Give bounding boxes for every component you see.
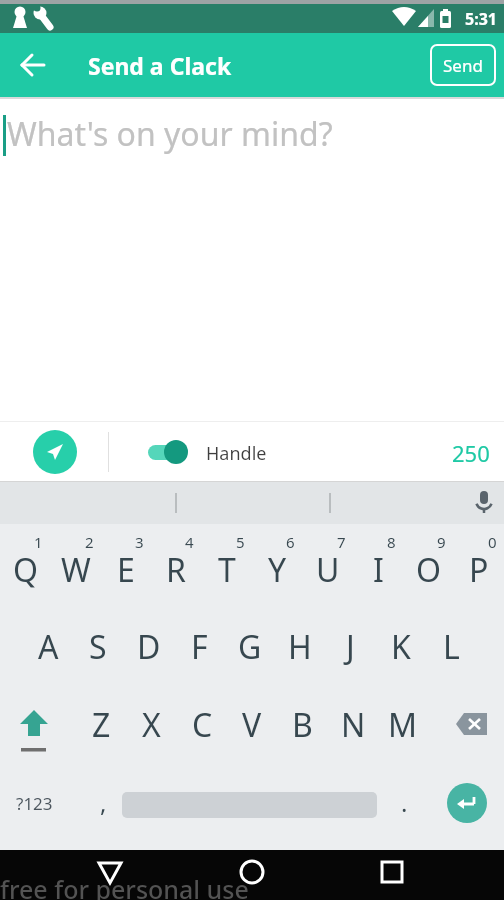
staticText: X: [142, 703, 161, 747]
staticText: M: [388, 703, 418, 747]
button[interactable]: K: [376, 623, 426, 671]
button[interactable]: S: [73, 623, 123, 671]
staticText: P: [469, 548, 489, 592]
button[interactable]: R: [151, 546, 201, 594]
staticText: B: [292, 703, 313, 747]
staticText: U: [316, 548, 340, 592]
staticText: E: [117, 548, 135, 592]
button[interactable]: F: [174, 623, 224, 671]
staticText: K: [391, 625, 411, 669]
button[interactable]: G: [225, 623, 275, 671]
staticText: free for personal use: [0, 872, 249, 900]
staticText: 9: [437, 532, 446, 552]
staticText: Z: [92, 703, 111, 747]
button[interactable]: N: [328, 701, 378, 749]
staticText: Send a Clack: [88, 50, 232, 81]
button[interactable]: X: [126, 701, 176, 749]
button[interactable]: I: [353, 546, 403, 594]
staticText: Q: [13, 548, 38, 592]
staticText: N: [341, 703, 366, 747]
button[interactable]: [168, 850, 336, 900]
staticText: 1: [34, 532, 43, 552]
button[interactable]: W: [51, 546, 101, 594]
button[interactable]: P: [454, 546, 504, 594]
staticText: A: [38, 625, 59, 669]
staticText: Send: [443, 54, 483, 77]
staticText: 3: [135, 532, 144, 552]
staticText: H: [288, 625, 312, 669]
button[interactable]: E: [101, 546, 151, 594]
staticText: D: [137, 625, 161, 669]
staticText: 5:31: [465, 8, 497, 30]
staticText: L: [443, 625, 460, 669]
button[interactable]: ?123: [16, 792, 53, 815]
button[interactable]: A: [23, 623, 73, 671]
staticText: S: [89, 625, 107, 669]
button[interactable]: Send: [430, 44, 496, 86]
button[interactable]: M: [378, 701, 428, 749]
staticText: Handle: [206, 441, 267, 466]
button[interactable]: H: [275, 623, 325, 671]
button[interactable]: B: [277, 701, 327, 749]
button[interactable]: V: [227, 701, 277, 749]
button[interactable]: .: [401, 786, 408, 819]
button[interactable]: [456, 713, 488, 735]
staticText: 0: [488, 532, 497, 552]
staticText: 2: [85, 532, 94, 552]
button[interactable]: O: [403, 546, 453, 594]
staticText: 4: [185, 532, 194, 552]
button[interactable]: L: [426, 623, 476, 671]
button[interactable]: T: [202, 546, 252, 594]
button[interactable]: Z: [76, 701, 126, 749]
staticText: T: [218, 548, 236, 592]
staticText: 8: [387, 532, 396, 552]
button[interactable]: [472, 491, 496, 515]
staticText: 250: [452, 438, 490, 468]
staticText: 5: [236, 532, 245, 552]
button[interactable]: [336, 850, 504, 900]
staticText: V: [242, 703, 262, 747]
button[interactable]: C: [177, 701, 227, 749]
button[interactable]: [0, 850, 168, 900]
button[interactable]: [148, 438, 188, 466]
staticText: F: [191, 625, 208, 669]
button[interactable]: ,: [100, 786, 107, 819]
button[interactable]: Q: [0, 546, 50, 594]
button[interactable]: J: [325, 623, 375, 671]
button[interactable]: [18, 710, 50, 758]
button[interactable]: [22, 54, 44, 76]
button[interactable]: [33, 430, 77, 474]
staticText: 6: [286, 532, 295, 552]
staticText: Y: [268, 548, 287, 592]
staticText: 7: [337, 532, 346, 552]
staticText: C: [192, 703, 213, 747]
staticText: What's on your mind?: [7, 112, 333, 156]
staticText: R: [166, 548, 186, 592]
button[interactable]: Y: [252, 546, 302, 594]
button[interactable]: [447, 783, 487, 823]
staticText: J: [346, 625, 355, 669]
staticText: O: [416, 548, 441, 592]
button[interactable]: D: [124, 623, 174, 671]
staticText: I: [373, 548, 384, 592]
button[interactable]: U: [303, 546, 353, 594]
staticText: G: [238, 625, 262, 669]
staticText: W: [61, 548, 91, 592]
